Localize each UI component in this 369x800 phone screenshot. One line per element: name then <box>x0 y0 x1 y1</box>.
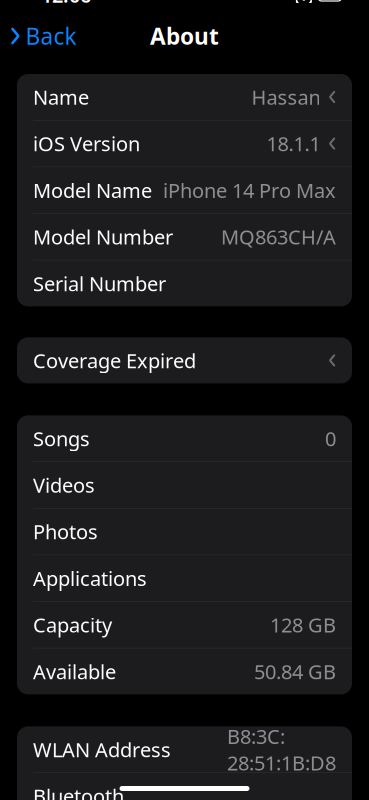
staticText: Coverage Expired <box>33 347 196 374</box>
button[interactable]: Available <box>17 648 352 694</box>
staticText: 128 GB <box>270 611 336 638</box>
staticText: 12:06 <box>41 0 91 8</box>
staticText: Videos <box>33 472 95 498</box>
button[interactable]: Coverage Expired <box>17 337 352 383</box>
button[interactable]: Model Name <box>17 167 352 213</box>
staticText: iPhone 14 Pro Max <box>163 177 336 203</box>
staticText: Back <box>25 21 76 51</box>
staticText: Hassan <box>251 84 320 110</box>
staticText: Capacity <box>33 611 112 638</box>
staticText: MQ863CH/A <box>221 223 336 250</box>
button[interactable]: Songs <box>17 415 352 461</box>
staticText: B8:3C:28:51:1B:D8 <box>227 723 336 776</box>
button[interactable]: Name <box>17 74 352 120</box>
button[interactable]: Back <box>0 17 84 55</box>
button[interactable]: Bluetooth <box>17 773 352 800</box>
button[interactable]: Serial Number <box>17 260 352 306</box>
staticText: Applications <box>33 565 147 591</box>
button[interactable]: Model Number <box>17 214 352 260</box>
button[interactable]: WLAN Address <box>17 726 352 772</box>
button[interactable]: Applications <box>17 555 352 601</box>
staticText: Serial Number <box>33 270 166 297</box>
staticText: Songs <box>33 425 90 452</box>
staticText: About <box>150 21 219 51</box>
staticText: Available <box>33 658 116 685</box>
staticText: 0 <box>325 425 336 452</box>
staticText: Model Name <box>33 177 152 203</box>
button[interactable]: Capacity <box>17 602 352 648</box>
staticText: WLAN Address <box>33 736 171 763</box>
staticText: 50.84 GB <box>254 658 336 685</box>
staticText: Photos <box>33 518 98 545</box>
staticText: iOS Version <box>33 130 140 157</box>
button[interactable]: iOS Version <box>17 121 352 167</box>
staticText: Model Number <box>33 223 173 250</box>
staticText: Bluetooth <box>33 783 124 800</box>
button[interactable]: Photos <box>17 509 352 555</box>
staticText: Name <box>33 84 89 110</box>
staticText: 18.1.1 <box>266 130 320 157</box>
button[interactable]: Videos <box>17 462 352 508</box>
